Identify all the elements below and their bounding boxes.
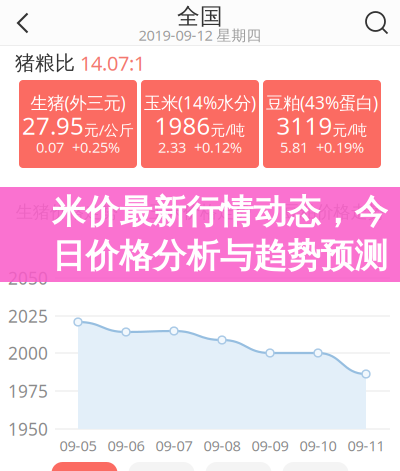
button[interactable]: 豆粕价格走势 [267,190,400,234]
staticText: 豆粕(43%蛋白) [266,91,378,114]
staticText: 09-06 [107,436,144,455]
staticText: 米价最新行情动态，今 [52,191,387,232]
staticText: 2019-09-12 星期四 [138,25,261,45]
staticText: 玉米价格走势 [149,201,251,223]
staticText: 元/公斤 [84,120,134,139]
button[interactable]: 生猪价格走势 [0,190,133,234]
staticText: 27.95 [22,110,84,141]
staticText: 2050 [8,266,48,289]
staticText: 09-08 [203,436,240,455]
staticText: 玉米(14%水分) [144,91,256,114]
staticText: 生猪价格走势 [16,201,118,223]
button[interactable]: 生猪(外三元) [19,80,137,168]
button[interactable]: 生猪 [51,462,117,471]
staticText: 09-07 [155,436,192,455]
staticText: 14.07:1 [75,50,145,76]
staticText: 元/吨 [332,120,367,139]
staticText: 0.07 +0.25% [36,137,120,157]
staticText: 09-05 [59,436,96,455]
staticText: 09-10 [299,436,336,455]
staticText: 09-09 [251,436,288,455]
staticText: 全国 [177,3,223,30]
button[interactable]: 豆粕(43%蛋白) [263,80,381,168]
staticText: 元/吨 [210,120,245,139]
staticText: 09-11 [347,436,384,455]
staticText: 2000 [8,341,48,364]
staticText: 生猪(外三元) [30,91,125,114]
staticText: 1986 [154,110,210,141]
staticText: 3119 [276,110,332,141]
staticText: 豆粕价格走势 [282,201,384,223]
staticText: 日价格分析与趋势预测 [52,235,387,276]
staticText: 1950 [8,417,48,440]
staticText: 1975 [8,379,48,402]
staticText: 2.33 +0.12% [158,137,242,157]
button[interactable]: Back [0,0,46,46]
button[interactable]: Search [354,0,400,46]
button[interactable]: 玉米(14%水分) [141,80,259,168]
staticText: 2025 [8,304,48,327]
staticText: 5.81 +0.19% [280,137,364,157]
button[interactable]: 玉米价格走势 [133,190,267,234]
staticText: 猪粮比 [15,51,75,75]
